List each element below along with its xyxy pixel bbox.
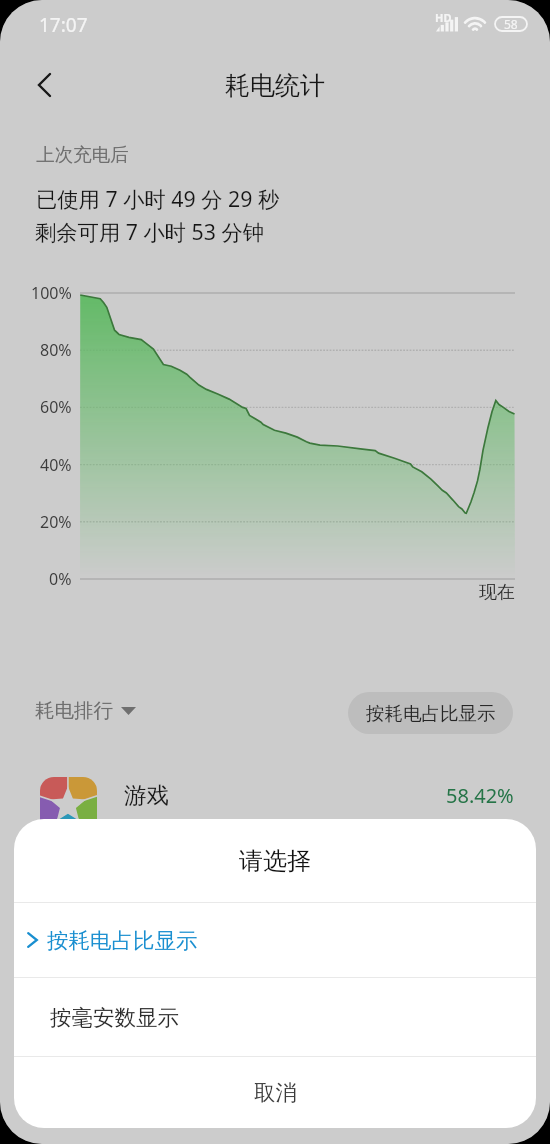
button[interactable]: 取消 bbox=[14, 1057, 536, 1128]
staticText: 耗电统计 bbox=[225, 70, 325, 101]
staticText: 60% bbox=[40, 396, 72, 418]
staticText: HD bbox=[435, 10, 452, 25]
staticText: 58 bbox=[504, 16, 518, 32]
button[interactable]: 耗电排行 bbox=[35, 698, 136, 723]
staticText: 请选择 bbox=[239, 846, 311, 876]
staticText: 耗电排行 bbox=[35, 698, 113, 723]
staticText: 现在 bbox=[479, 581, 515, 604]
button[interactable]: 按耗电占比显示 bbox=[348, 692, 513, 734]
staticText: 已使用 7 小时 49 分 29 秒 bbox=[36, 184, 280, 213]
staticText: 0% bbox=[49, 568, 72, 590]
staticText: 按毫安数显示 bbox=[50, 1004, 179, 1031]
staticText: 游戏 bbox=[124, 781, 169, 809]
staticText: 剩余可用 7 小时 53 分钟 bbox=[35, 217, 265, 246]
button[interactable]: 按毫安数显示 bbox=[14, 978, 536, 1056]
button[interactable]: Back bbox=[15, 56, 73, 114]
staticText: 100% bbox=[31, 282, 72, 304]
staticText: 上次充电后 bbox=[36, 143, 129, 166]
button[interactable]: 按耗电占比显示 bbox=[14, 903, 536, 977]
staticText: 40% bbox=[40, 454, 72, 476]
staticText: 58.42% bbox=[446, 782, 514, 809]
staticText: 17:07 bbox=[39, 12, 88, 38]
staticText: 取消 bbox=[254, 1079, 297, 1106]
staticText: 80% bbox=[40, 339, 72, 361]
staticText: 按耗电占比显示 bbox=[47, 927, 198, 954]
staticText: 按耗电占比显示 bbox=[366, 702, 496, 725]
button[interactable] bbox=[0, 758, 550, 854]
staticText: 20% bbox=[40, 511, 72, 533]
